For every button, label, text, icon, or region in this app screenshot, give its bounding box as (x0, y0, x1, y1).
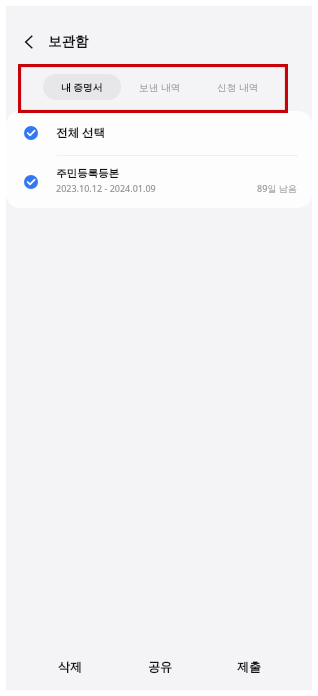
staticText: 보낸 내역 (139, 81, 181, 94)
button[interactable]: 보낸 내역 (121, 74, 199, 100)
staticText: 89일 남음 (257, 182, 297, 194)
button[interactable]: Back (6, 22, 49, 62)
button[interactable]: 신청 내역 (199, 74, 277, 100)
staticText: 보관함 (48, 33, 89, 50)
staticText: 주민등록등본 (56, 167, 119, 180)
staticText: 삭제 (58, 659, 82, 674)
button[interactable]: 제출 (204, 643, 293, 689)
staticText: 2023.10.12 - 2024.01.09 (56, 182, 156, 194)
staticText: 제출 (237, 659, 261, 674)
staticText: 신청 내역 (217, 81, 259, 94)
button[interactable]: 전체 선택 (6, 111, 312, 155)
button[interactable]: 주민등록등본 (6, 156, 312, 208)
staticText: 공유 (148, 659, 172, 674)
button[interactable]: 삭제 (25, 643, 115, 689)
button[interactable]: 내 증명서 (43, 74, 121, 100)
button[interactable]: 공유 (115, 643, 204, 689)
staticText: 전체 선택 (56, 125, 105, 141)
staticText: 내 증명서 (61, 81, 103, 94)
